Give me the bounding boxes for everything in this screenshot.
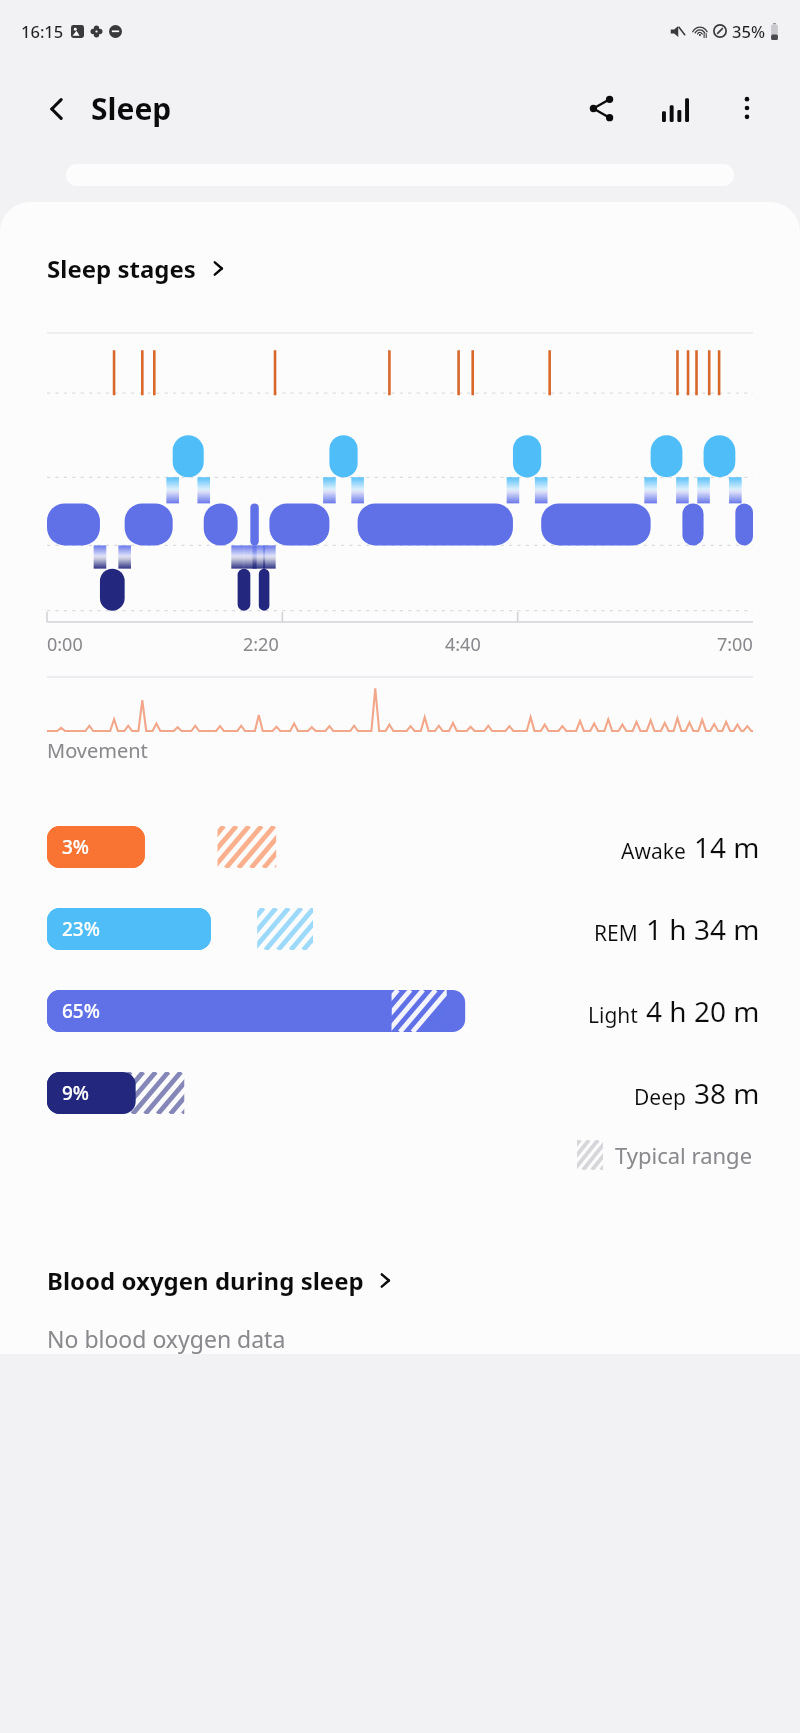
staticText: 0:00	[47, 632, 83, 657]
staticText: 14 m	[694, 828, 760, 866]
staticText: 3%	[62, 834, 90, 860]
staticText: 9%	[62, 1080, 90, 1106]
staticText: REM	[594, 919, 638, 948]
button[interactable]: Blood oxygen during sleep	[0, 1262, 800, 1299]
staticText: Typical range	[615, 1140, 753, 1170]
staticText: Blood oxygen during sleep	[47, 1264, 364, 1297]
button[interactable]: Sleep stages	[0, 248, 800, 289]
staticText: 7:00	[717, 632, 753, 657]
staticText: 23%	[62, 916, 100, 942]
staticText: Sleep	[91, 88, 172, 129]
button[interactable]: 9%	[47, 1072, 760, 1114]
staticText: Movement	[47, 737, 148, 764]
staticText: 65%	[62, 998, 100, 1024]
button[interactable]: 65%	[47, 990, 760, 1032]
button[interactable]: Back	[40, 92, 74, 126]
staticText: 1 h 34 m	[646, 910, 760, 948]
staticText: Deep	[634, 1083, 686, 1112]
button[interactable]: Share	[578, 85, 624, 131]
staticText: 38 m	[694, 1074, 760, 1112]
staticText: Sleep stages	[47, 252, 196, 285]
staticText: 2:20	[243, 632, 279, 657]
staticText: 35%	[732, 20, 765, 42]
staticText: No blood oxygen data	[47, 1323, 286, 1354]
staticText: Awake	[621, 837, 686, 866]
button[interactable]: 3%	[47, 826, 760, 868]
staticText: Light	[588, 1001, 638, 1030]
staticText: 4:40	[445, 632, 481, 657]
staticText: 16:15	[21, 20, 64, 42]
staticText: 4 h 20 m	[646, 992, 760, 1030]
button[interactable]: 23%	[47, 908, 760, 950]
button[interactable]: More options	[724, 85, 770, 131]
button[interactable]: Chart	[652, 85, 698, 131]
